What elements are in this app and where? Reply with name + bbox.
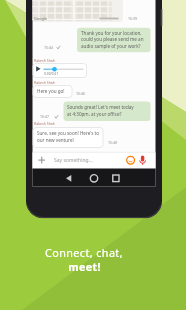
staticText: meet!: [68, 260, 101, 274]
button[interactable]: Connect, chat,: [24, 245, 144, 260]
staticText: Rakesh Shah: [34, 58, 55, 63]
button[interactable]: [50, 153, 122, 168]
staticText: could you please send me an: [81, 36, 144, 42]
staticText: 15:44: [44, 45, 53, 50]
staticText: Connect, chat,: [45, 245, 123, 260]
staticText: 15:46: [76, 91, 85, 96]
staticText: 15:47: [40, 114, 49, 119]
staticText: Say something...: [54, 157, 93, 164]
staticText: audio sample of your work?: [81, 43, 141, 49]
button[interactable]: [33, 64, 45, 78]
button[interactable]: meet!: [24, 260, 144, 274]
button[interactable]: [34, 153, 48, 168]
button[interactable]: [124, 153, 137, 168]
staticText: Sure, see you soon! Here's to: [37, 130, 100, 136]
button[interactable]: [60, 169, 78, 186]
button[interactable]: [108, 169, 126, 186]
staticText: 0:00/0:21: [44, 71, 59, 75]
staticText: at 4:30pm, at your office?: [67, 111, 122, 117]
button[interactable]: [85, 169, 103, 186]
staticText: 15:48: [108, 140, 117, 145]
staticText: our new venture!: [37, 137, 74, 143]
staticText: 15:39: [128, 16, 137, 21]
staticText: Here you go!: [37, 88, 65, 94]
staticText: Rakesh Shah: [34, 80, 55, 85]
staticText: Rakesh Shah: [34, 121, 55, 126]
staticText: Sounds great! Let's meet today: [67, 104, 134, 110]
staticText: Google: [34, 16, 48, 21]
staticText: Thank you for your location,: [81, 30, 142, 36]
button[interactable]: [137, 153, 149, 168]
